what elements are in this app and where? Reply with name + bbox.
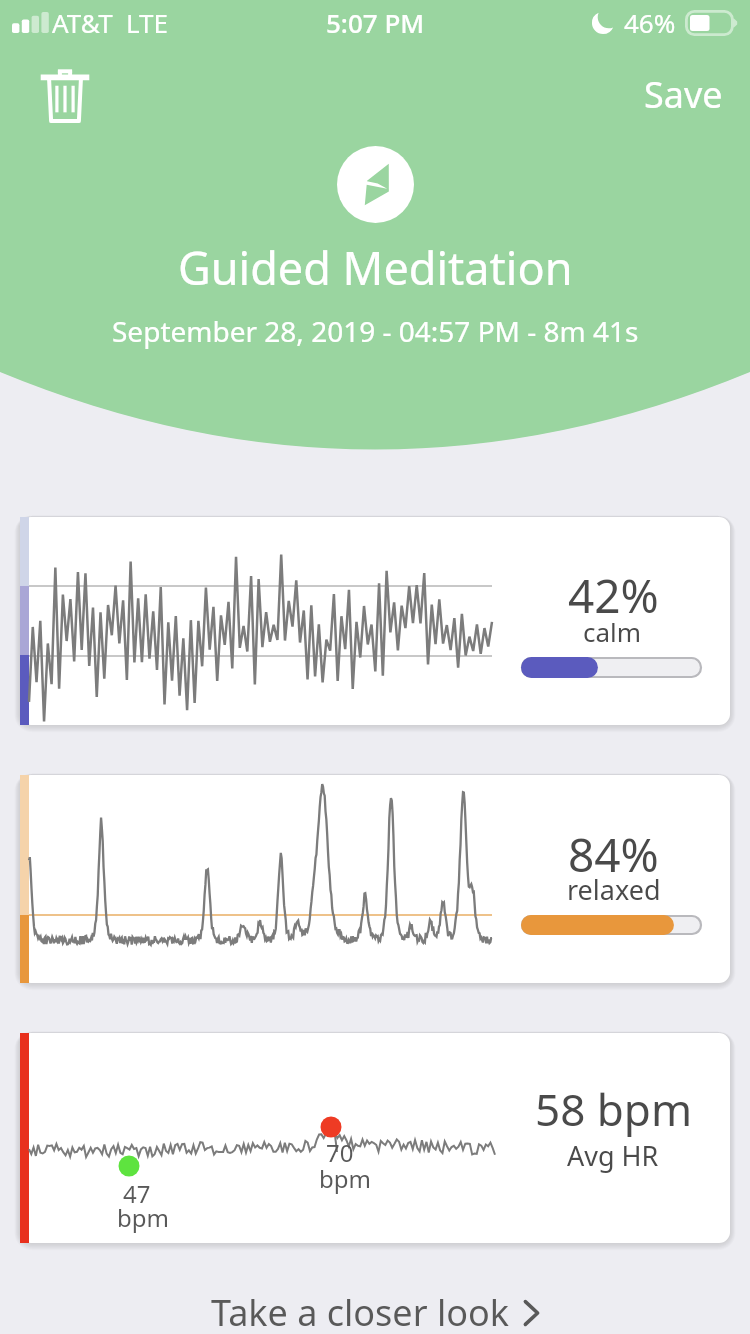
staticText: bpm (319, 1162, 371, 1195)
staticText: LTE (126, 5, 169, 40)
staticText: 46% (624, 5, 676, 40)
staticText: relaxed (567, 871, 661, 908)
staticText: Take a closer look (211, 1288, 509, 1334)
staticText: Avg HR (567, 1137, 659, 1174)
staticText: 70 (326, 1136, 354, 1169)
staticText: 84% (568, 823, 659, 886)
button[interactable]: 42% (0, 0, 750, 1334)
staticText: Guided Meditation (178, 237, 573, 298)
staticText: September 28, 2019 - 04:57 PM - 8m 41s (112, 312, 639, 350)
staticText: bpm (117, 1201, 169, 1234)
staticText: AT&T (52, 5, 113, 40)
staticText: 42% (568, 564, 659, 627)
button[interactable]: 47 (0, 0, 750, 1334)
button[interactable]: Take a closer look (0, 1262, 750, 1334)
button[interactable]: Delete (35, 58, 95, 134)
staticText: 58 bpm (535, 1079, 693, 1139)
staticText: 5:07 PM (326, 5, 425, 40)
button[interactable]: Save (644, 70, 723, 119)
button[interactable]: 84% (0, 0, 750, 1334)
staticText: 47 (123, 1177, 151, 1210)
staticText: calm (583, 614, 642, 649)
staticText: Save (644, 70, 723, 119)
